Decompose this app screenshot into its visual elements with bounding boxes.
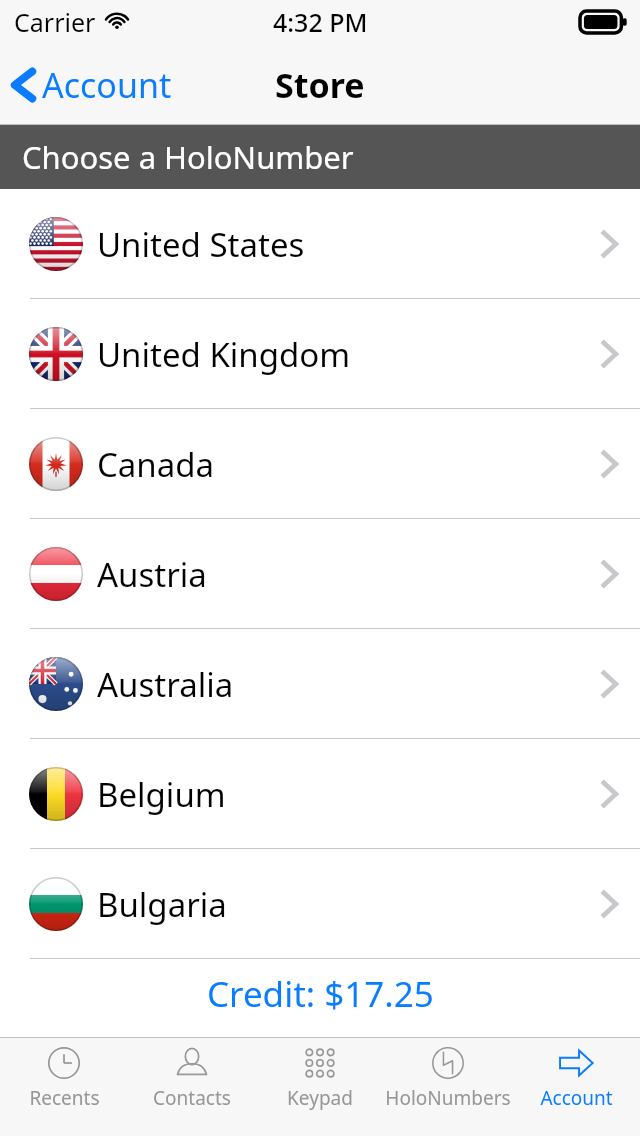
staticText: Austria bbox=[97, 552, 207, 597]
staticText: Keypad bbox=[287, 1085, 353, 1111]
button[interactable]: Contacts bbox=[128, 1037, 256, 1136]
button[interactable]: Account bbox=[512, 1037, 640, 1136]
staticText: Belgium bbox=[97, 772, 226, 817]
button[interactable]: Belgium bbox=[0, 739, 640, 849]
staticText: Credit: $17.25 bbox=[207, 970, 434, 1018]
staticText: Recents bbox=[29, 1085, 100, 1111]
staticText: Account bbox=[42, 62, 172, 108]
button[interactable]: Austria bbox=[0, 519, 640, 629]
staticText: Carrier bbox=[14, 5, 96, 39]
staticText: Store bbox=[275, 62, 365, 108]
button[interactable]: Canada bbox=[0, 409, 640, 519]
staticText: Australia bbox=[97, 662, 234, 707]
staticText: 4:32 PM bbox=[273, 5, 368, 39]
staticText: Bulgaria bbox=[97, 882, 227, 927]
staticText: United Kingdom bbox=[97, 332, 351, 377]
button[interactable]: Australia bbox=[0, 629, 640, 739]
button[interactable]: HoloNumbers bbox=[384, 1037, 512, 1136]
button[interactable]: Recents bbox=[0, 1037, 128, 1136]
staticText: HoloNumbers bbox=[385, 1085, 511, 1111]
staticText: Account bbox=[540, 1085, 613, 1111]
button[interactable]: United Kingdom bbox=[0, 299, 640, 409]
staticText: Choose a HoloNumber bbox=[22, 136, 354, 178]
button[interactable]: Bulgaria bbox=[0, 849, 640, 959]
button[interactable]: United States bbox=[0, 189, 640, 299]
button[interactable]: Credit: $17.25 bbox=[0, 959, 640, 1037]
staticText: United States bbox=[97, 222, 305, 267]
button[interactable]: Account bbox=[10, 62, 172, 108]
staticText: Contacts bbox=[153, 1085, 231, 1111]
staticText: Canada bbox=[97, 442, 215, 487]
button[interactable]: Keypad bbox=[256, 1037, 384, 1136]
